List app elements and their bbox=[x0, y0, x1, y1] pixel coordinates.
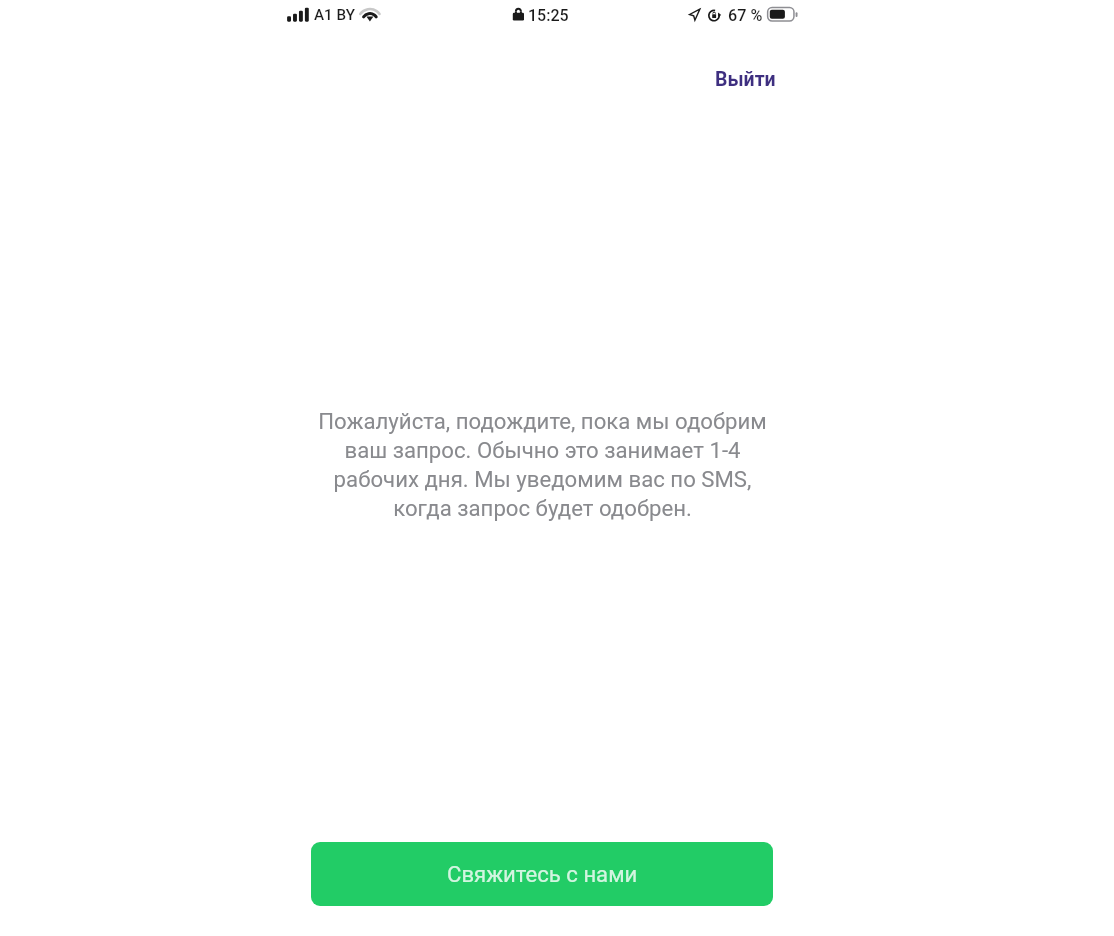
staticText: Пожалуйста, подождите, пока мы одобрим в… bbox=[318, 408, 767, 521]
staticText: Выйти bbox=[715, 68, 776, 91]
staticText: 67 % bbox=[728, 6, 763, 25]
button[interactable]: Выйти bbox=[699, 58, 792, 101]
staticText: Свяжитесь с нами bbox=[447, 861, 638, 887]
other: Status bar: signal strength, Wi-Fi, lock… bbox=[280, 0, 805, 28]
staticText: A1 BY bbox=[314, 6, 355, 24]
staticText: 15:25 bbox=[528, 6, 569, 25]
button[interactable]: Свяжитесь с нами bbox=[311, 842, 773, 906]
